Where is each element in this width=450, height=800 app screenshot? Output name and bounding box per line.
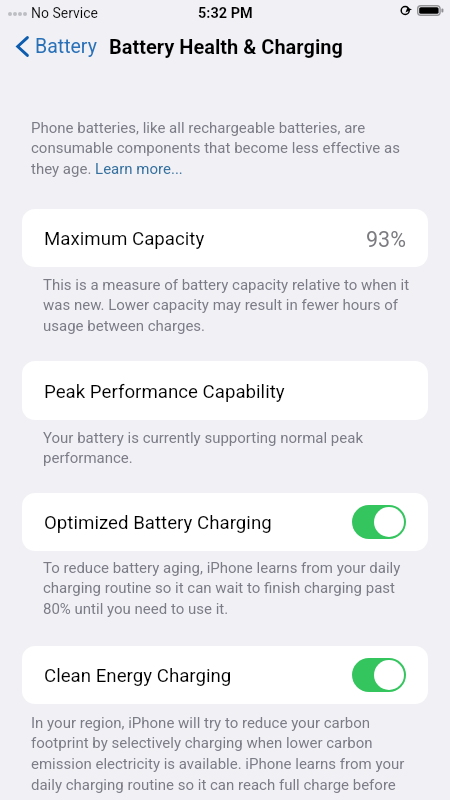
button[interactable]: Learn more about battery health [94, 160, 184, 180]
staticText: To reduce battery aging, iPhone learns f… [43, 559, 411, 618]
staticText: 93% [366, 227, 406, 252]
button[interactable]: Clean Energy Charging [22, 646, 428, 704]
staticText: In your region, iPhone will try to reduc… [31, 714, 411, 794]
button[interactable]: Maximum Capacity [22, 209, 428, 267]
button[interactable]: Optimized Battery Charging [22, 493, 428, 551]
staticText: Phone batteries, like all rechargeable b… [31, 119, 401, 178]
staticText: Your battery is currently supporting nor… [43, 429, 418, 467]
staticText: Battery Health & Charging [109, 35, 343, 58]
staticText: Clean Energy Charging [44, 665, 232, 687]
staticText: Maximum Capacity [44, 228, 205, 250]
button[interactable]: Toggle, on [352, 505, 406, 539]
staticText: No Service [31, 5, 98, 21]
staticText: Optimized Battery Charging [44, 512, 272, 534]
button[interactable]: Battery [0, 34, 105, 63]
staticText: 5:32 PM [198, 5, 253, 22]
button[interactable]: Peak Performance Capability [22, 361, 428, 420]
other: Battery [417, 5, 444, 16]
staticText: Peak Performance Capability [44, 381, 285, 403]
staticText: Battery [35, 35, 97, 58]
staticText: This is a measure of battery capacity re… [43, 276, 418, 335]
button[interactable]: Toggle, on [352, 658, 406, 692]
other: Location services in use [401, 5, 412, 16]
